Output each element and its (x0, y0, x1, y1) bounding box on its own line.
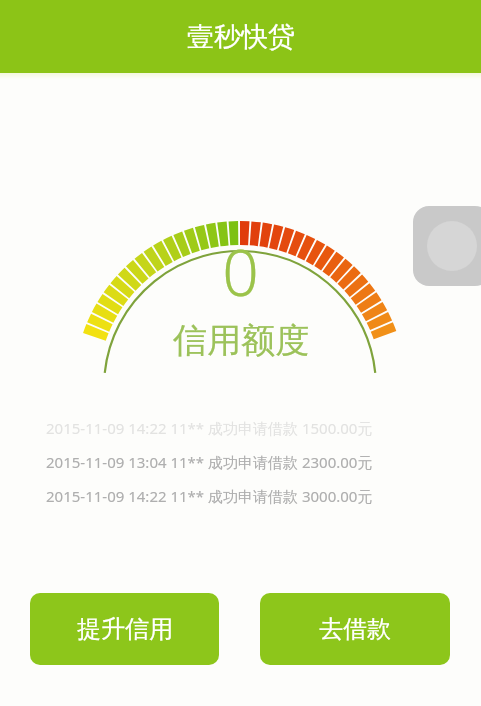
staticText: 2015-11-09 14:22 11** 成功申请借款 1500.00元 (46, 418, 373, 438)
staticText: 0 (222, 228, 259, 314)
staticText: 去借款 (319, 614, 391, 644)
staticText: 壹秒快贷 (187, 20, 295, 54)
button[interactable]: 去借款 (260, 593, 450, 665)
button[interactable]: 提升信用 (30, 593, 219, 665)
staticText: 2015-11-09 14:22 11** 成功申请借款 3000.00元 (46, 486, 373, 506)
staticText: 提升信用 (77, 614, 173, 644)
staticText: 信用额度 (173, 319, 309, 362)
button[interactable]: Assistant (413, 206, 481, 286)
staticText: 2015-11-09 13:04 11** 成功申请借款 2300.00元 (46, 452, 373, 472)
